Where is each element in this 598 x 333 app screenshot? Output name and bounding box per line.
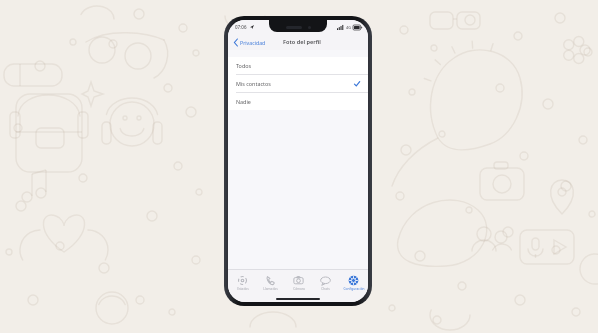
- staticText: Estados: [237, 287, 249, 291]
- button[interactable]: Configuración: [340, 275, 367, 291]
- button[interactable]: Nadie: [228, 93, 368, 110]
- staticText: Chats: [321, 287, 330, 291]
- staticText: Llamadas: [263, 287, 278, 291]
- staticText: Cámara: [293, 287, 305, 291]
- staticText: Todos: [236, 62, 252, 69]
- staticText: Mis contactos: [236, 80, 271, 87]
- button[interactable]: Cámara: [285, 275, 312, 291]
- staticText: Privacidad: [240, 39, 266, 46]
- button[interactable]: Mis contactos: [228, 75, 368, 92]
- staticText: 07:06: [235, 24, 247, 30]
- button[interactable]: Privacidad: [233, 37, 267, 48]
- staticText: 4G: [346, 25, 351, 30]
- button[interactable]: Llamadas: [257, 275, 284, 291]
- button[interactable]: Estados: [229, 275, 256, 291]
- button[interactable]: Chats: [312, 275, 339, 291]
- staticText: Foto del perfil: [283, 38, 321, 46]
- button[interactable]: Todos: [228, 57, 368, 74]
- staticText: Nadie: [236, 98, 251, 105]
- staticText: Configuración: [343, 287, 365, 291]
